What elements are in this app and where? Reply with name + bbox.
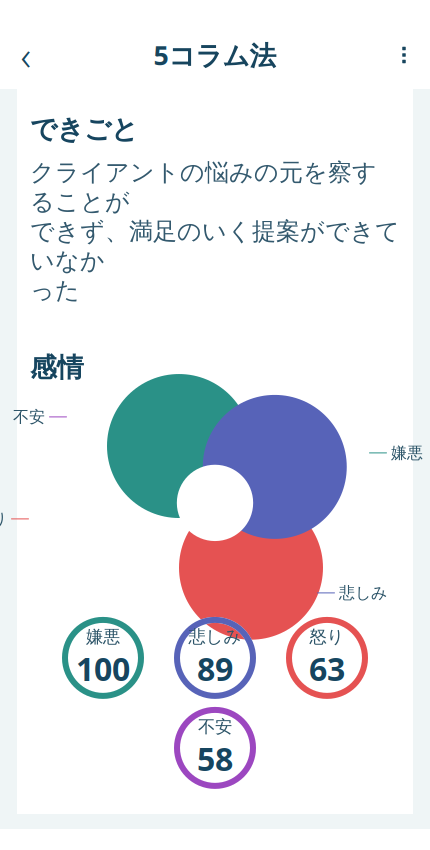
staticText: 89: [197, 647, 233, 690]
staticText: できごと: [30, 113, 138, 146]
button[interactable]: 戻る: [0, 27, 52, 83]
staticText: 嫌悪: [391, 443, 423, 463]
staticText: 悲しみ: [188, 626, 241, 647]
staticText: クライアントの悩みの元を察することが できず、満足のいく提案ができていなか った: [30, 158, 400, 305]
staticText: 63: [309, 647, 345, 690]
staticText: 不安: [13, 407, 45, 427]
staticText: 嫌悪: [86, 626, 120, 647]
button[interactable]: その他のオプション: [378, 27, 430, 83]
staticText: 怒り: [309, 626, 344, 647]
staticText: 感情: [30, 351, 84, 384]
staticText: 悲しみ: [339, 583, 387, 603]
staticText: 怒り: [0, 509, 7, 529]
staticText: 5コラム法: [153, 37, 276, 73]
staticText: 100: [76, 647, 130, 690]
staticText: 58: [197, 737, 233, 780]
staticText: ‹: [20, 28, 31, 81]
staticText: 不安: [198, 716, 232, 737]
